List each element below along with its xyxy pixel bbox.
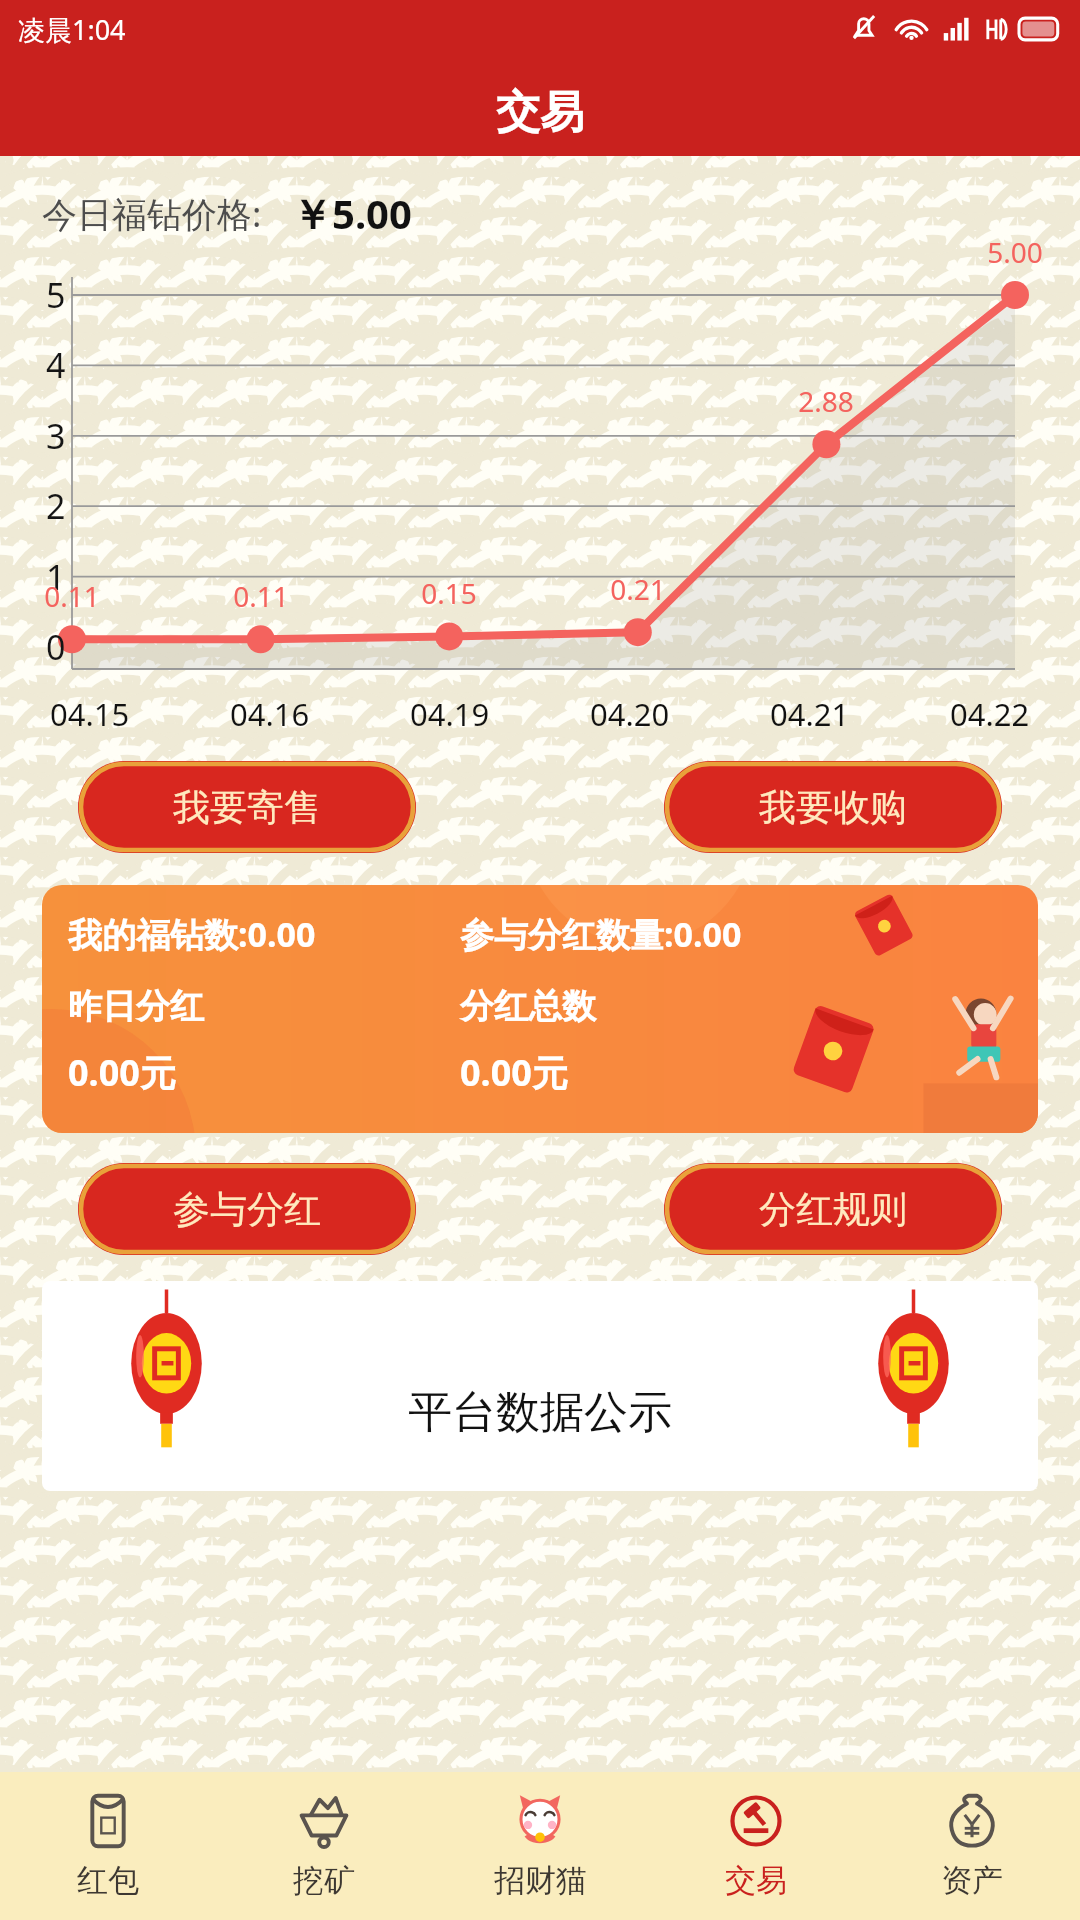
- button[interactable]: 平台数据公示: [42, 1281, 1038, 1491]
- staticText: 0.11: [44, 577, 100, 615]
- button[interactable]: 我要收购: [664, 761, 1002, 853]
- staticText: 2: [46, 483, 66, 529]
- button[interactable]: 我的福钻数:0.00: [42, 885, 1038, 1133]
- staticText: 昨日分红: [68, 985, 460, 1028]
- staticText: 0.00元: [68, 1048, 460, 1097]
- other: 招财猫: [512, 1793, 568, 1849]
- staticText: 1: [46, 554, 66, 600]
- other: 交易: [728, 1793, 784, 1849]
- staticText: 5.00: [987, 233, 1043, 271]
- staticText: 2.88: [798, 382, 854, 420]
- button[interactable]: 红包: [0, 1772, 216, 1920]
- staticText: 0.15: [421, 574, 477, 612]
- button[interactable]: 交易: [648, 1772, 864, 1920]
- staticText: 招财猫: [494, 1861, 587, 1900]
- staticText: 参与分红: [173, 1186, 321, 1233]
- other: 红包: [80, 1793, 136, 1849]
- staticText: 3: [46, 413, 66, 459]
- staticText: 0.11: [233, 577, 289, 615]
- button[interactable]: 资产: [864, 1772, 1080, 1920]
- staticText: 0.21: [610, 570, 666, 608]
- staticText: 我的福钻数:0.00: [68, 911, 460, 957]
- staticText: 04.15: [50, 693, 130, 735]
- staticText: 分红总数: [460, 985, 596, 1028]
- staticText: 04.20: [590, 693, 670, 735]
- staticText: 5: [46, 272, 66, 318]
- staticText: ￥5.00: [292, 186, 412, 241]
- staticText: 交易: [725, 1861, 787, 1900]
- button[interactable]: 挖矿: [216, 1772, 432, 1920]
- staticText: 我要寄售: [173, 784, 321, 831]
- staticText: 凌晨1:04: [18, 11, 126, 48]
- staticText: 04.16: [230, 693, 310, 735]
- staticText: 平台数据公示: [408, 1385, 672, 1440]
- other: 挖矿: [296, 1793, 352, 1849]
- staticText: 交易: [496, 85, 584, 140]
- staticText: 04.21: [770, 693, 850, 735]
- staticText: 参与分红数量:0.00: [460, 911, 742, 957]
- staticText: 04.22: [950, 693, 1030, 735]
- staticText: 资产: [941, 1861, 1003, 1900]
- button[interactable]: 分红规则: [664, 1163, 1002, 1255]
- button[interactable]: 我要寄售: [78, 761, 416, 853]
- staticText: 分红规则: [759, 1186, 907, 1233]
- staticText: 0: [46, 624, 66, 670]
- staticText: 挖矿: [293, 1861, 355, 1900]
- staticText: 0.00元: [460, 1048, 568, 1097]
- staticText: 04.19: [410, 693, 490, 735]
- button[interactable]: 参与分红: [78, 1163, 416, 1255]
- other: 资产: [944, 1793, 1000, 1849]
- staticText: 红包: [77, 1861, 139, 1900]
- staticText: 我要收购: [759, 784, 907, 831]
- staticText: 今日福钻价格:: [42, 190, 262, 238]
- staticText: 4: [46, 342, 66, 388]
- button[interactable]: 招财猫: [432, 1772, 648, 1920]
